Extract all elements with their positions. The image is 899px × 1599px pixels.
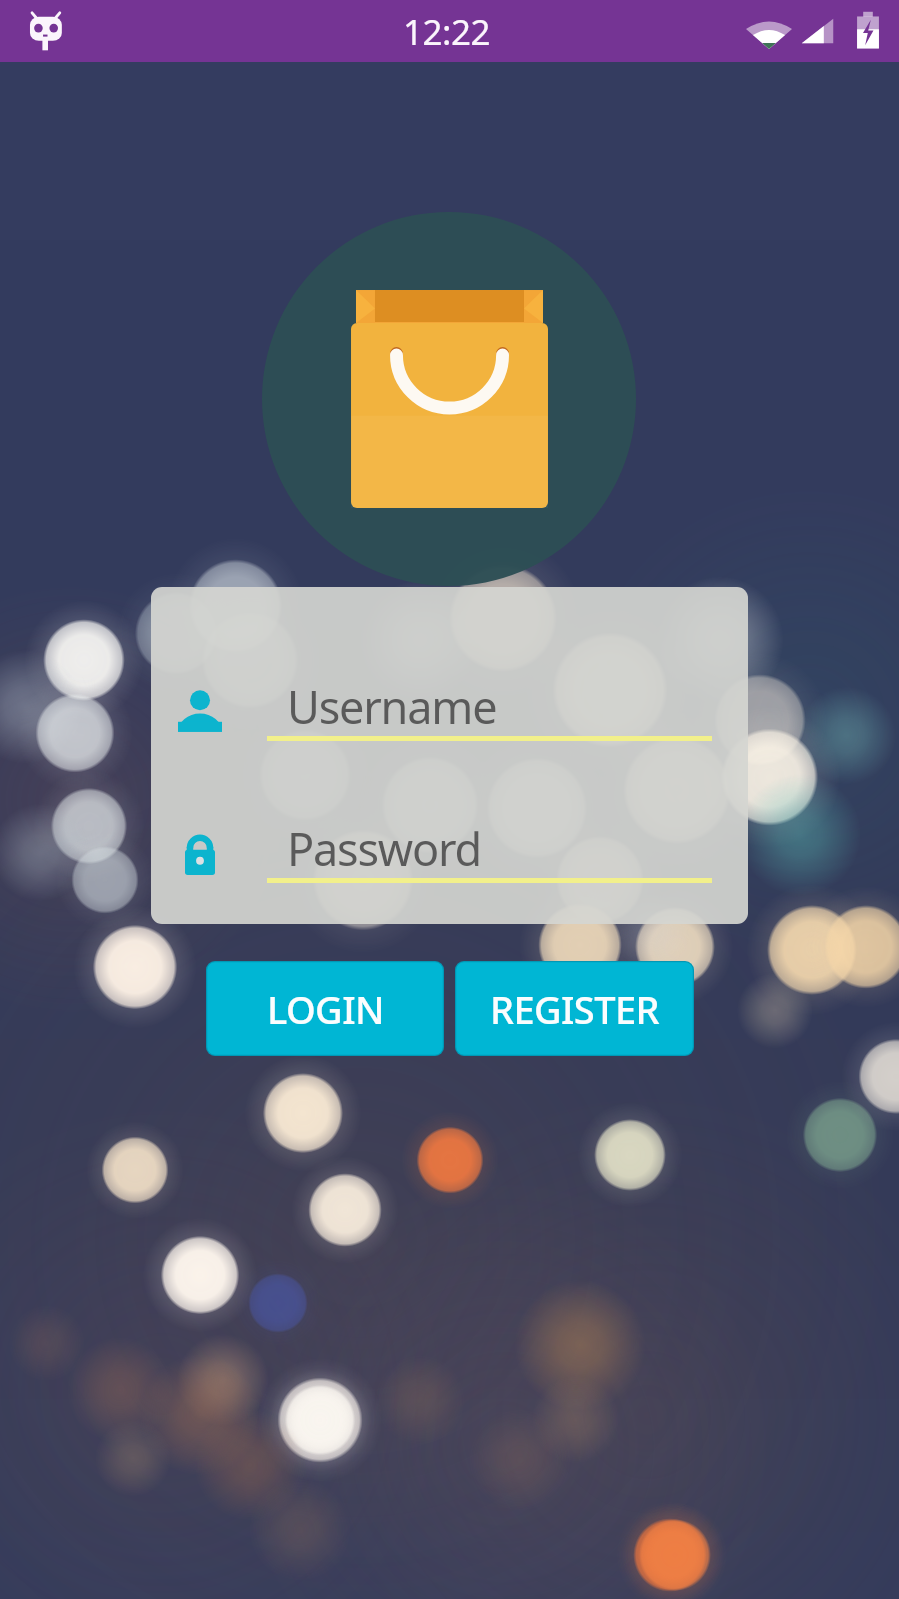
staticText: LOGIN <box>267 983 384 1035</box>
other: Mobile signal <box>800 13 835 49</box>
button[interactable]: REGISTER <box>455 961 694 1056</box>
staticText: Password <box>287 818 481 879</box>
other: CyanogenMod <box>28 10 64 54</box>
button[interactable]: Username <box>151 661 748 747</box>
staticText: Username <box>287 676 497 737</box>
other: Battery charging <box>855 11 881 50</box>
other: Wi-Fi <box>746 13 792 50</box>
staticText: REGISTER <box>490 983 659 1035</box>
button[interactable]: LOGIN <box>206 961 444 1056</box>
staticText: 12:22 <box>403 8 490 56</box>
button[interactable]: Password <box>151 803 748 889</box>
